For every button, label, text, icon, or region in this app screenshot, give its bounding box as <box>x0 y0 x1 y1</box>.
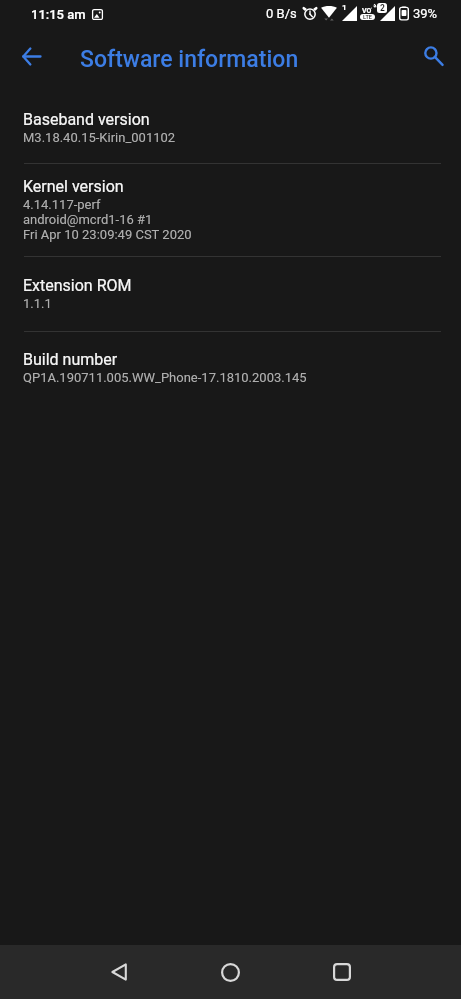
staticText: android@mcrd1-16 #1 <box>23 212 153 227</box>
staticText: Baseband version <box>23 112 150 129</box>
staticText: Build number <box>23 352 118 369</box>
staticText: 4.14.117-perf <box>23 197 101 212</box>
button[interactable]: Extension ROM <box>0 256 461 331</box>
staticText: Kernel version <box>23 179 124 196</box>
button[interactable]: Build number <box>0 331 461 406</box>
staticText: QP1A.190711.005.WW_Phone-17.1810.2003.14… <box>23 370 307 385</box>
button[interactable]: Kernel version <box>0 163 461 256</box>
staticText: M3.18.40.15-Kirin_001102 <box>23 130 176 145</box>
staticText: LTE <box>363 14 372 20</box>
button[interactable]: Back <box>11 36 51 76</box>
button[interactable]: Home <box>206 948 254 996</box>
staticText: VO <box>362 7 372 15</box>
button[interactable]: Back <box>95 948 143 996</box>
staticText: 1.1.1 <box>23 296 52 311</box>
staticText: Software information <box>80 46 299 72</box>
staticText: 39% <box>413 7 438 21</box>
button[interactable]: Baseband version <box>0 95 461 163</box>
staticText: Extension ROM <box>23 278 132 295</box>
staticText: 1 <box>342 3 347 12</box>
staticText: 2 <box>380 3 385 13</box>
button[interactable]: Recent apps <box>318 948 366 996</box>
staticText: 0 B/s <box>266 7 297 21</box>
staticText: 11:15 am <box>31 7 86 22</box>
staticText: Fri Apr 10 23:09:49 CST 2020 <box>23 227 192 242</box>
button[interactable]: Search <box>412 35 452 75</box>
